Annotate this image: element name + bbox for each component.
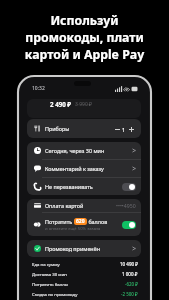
staticText: -2 500 ₽ bbox=[121, 291, 138, 297]
staticText: баллов bbox=[87, 218, 108, 225]
button[interactable]: Не перезванивать bbox=[27, 178, 141, 195]
staticText: 3 990 ₽ bbox=[75, 101, 92, 108]
staticText: Используй промокоды, плати картой и Appl… bbox=[0, 12, 169, 63]
button[interactable]: Убрать bbox=[112, 124, 122, 134]
other: Открыть bbox=[132, 245, 136, 252]
staticText: Доставка 30 мин bbox=[32, 271, 67, 277]
button[interactable]: Промокод применён bbox=[27, 240, 141, 257]
staticText: Комментарий к заказу bbox=[45, 165, 104, 172]
staticText: -620 ₽ bbox=[125, 281, 138, 287]
staticText: Сегодня, через 30 мин bbox=[45, 147, 105, 154]
staticText: 620 bbox=[76, 218, 85, 225]
button[interactable]: Потратить bbox=[27, 213, 141, 236]
button[interactable]: Сегодня, через 30 мин bbox=[27, 142, 141, 159]
staticText: 1 bbox=[122, 126, 126, 133]
staticText: 2 490 ₽ bbox=[50, 100, 72, 108]
button[interactable]: Переключатель bbox=[122, 183, 136, 191]
staticText: Не перезванивать bbox=[45, 183, 93, 190]
staticText: 10:32 bbox=[32, 85, 45, 92]
other: Открыть bbox=[132, 165, 136, 172]
button[interactable]: Приборы bbox=[27, 119, 141, 138]
button[interactable]: Добавить bbox=[126, 124, 136, 134]
staticText: Скидка по промокоду bbox=[32, 291, 78, 297]
staticText: Приборы bbox=[45, 125, 70, 132]
staticText: 1 000 ₽ bbox=[122, 271, 138, 277]
staticText: и оплатите ещё 50% заказа bbox=[45, 226, 101, 232]
staticText: ••••4950 bbox=[116, 202, 136, 209]
button[interactable]: Оплата картой bbox=[27, 199, 141, 212]
button[interactable]: Комментарий к заказу bbox=[27, 160, 141, 177]
staticText: Потратить bbox=[45, 218, 74, 225]
staticText: Еда на сумму bbox=[32, 261, 60, 267]
staticText: Промокод применён bbox=[45, 245, 100, 252]
other: Открыть bbox=[132, 147, 136, 154]
staticText: Оплата картой bbox=[45, 202, 84, 209]
button[interactable]: Переключатель bbox=[122, 221, 136, 229]
staticText: 10 490 ₽ bbox=[120, 261, 138, 267]
staticText: Потратить баллы bbox=[32, 281, 68, 287]
